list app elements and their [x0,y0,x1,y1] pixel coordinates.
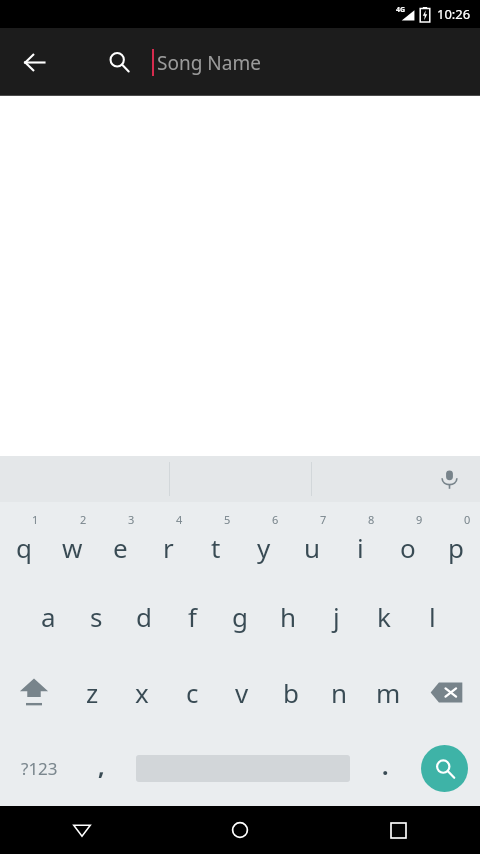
button[interactable]: Back [9,37,59,87]
staticText: g [232,599,248,634]
staticText: d [136,599,152,634]
staticText: 5 [224,512,231,527]
button[interactable]: k [360,578,408,654]
staticText: 3 [128,512,135,527]
staticText: 9 [416,512,423,527]
button[interactable]: Voice input [429,459,469,499]
button[interactable]: ?123 [0,730,78,806]
staticText: p [448,530,464,565]
button[interactable]: z [67,654,117,730]
button[interactable]: Back [58,806,106,854]
staticText: u [304,530,321,565]
button[interactable]: x [117,654,167,730]
button[interactable]: 3 [96,502,144,578]
staticText: n [331,675,348,710]
staticText: 8 [368,512,375,527]
button[interactable]: c [167,654,217,730]
button[interactable]: 2 [48,502,96,578]
button[interactable]: m [364,654,413,730]
staticText: h [280,599,297,634]
button[interactable]: 9 [384,502,432,578]
button[interactable]: Shift [0,654,67,730]
staticText: t [211,530,221,565]
button[interactable]: . [362,730,408,806]
staticText: 2 [80,512,87,527]
button[interactable]: Recents [374,806,422,854]
staticText: 4 [176,512,183,527]
staticText: ?123 [21,757,58,780]
staticText: m [376,675,401,710]
button[interactable]: j [312,578,360,654]
staticText: w [62,530,83,565]
button[interactable]: b [266,654,315,730]
staticText: 7 [320,512,327,527]
button[interactable]: n [315,654,364,730]
staticText: 6 [272,512,279,527]
staticText: q [16,530,32,565]
staticText: Song Name [157,50,261,76]
button[interactable]: 7 [288,502,336,578]
staticText: , [98,750,105,781]
button[interactable]: Home [216,806,264,854]
other: Search [108,51,131,74]
staticText: r [163,530,174,565]
staticText: e [113,530,128,565]
button[interactable]: Search [408,730,480,806]
staticText: a [41,599,56,634]
button[interactable]: s [72,578,120,654]
button[interactable]: h [264,578,312,654]
staticText: y [257,530,271,565]
staticText: b [283,675,299,710]
staticText: f [188,599,197,634]
staticText: s [90,599,103,634]
button[interactable]: 1 [0,502,48,578]
staticText: l [429,599,436,634]
staticText: 1 [32,512,39,527]
staticText: 4G [396,5,406,15]
button[interactable]: l [408,578,456,654]
button[interactable]: , [78,730,124,806]
staticText: z [86,675,99,710]
button[interactable]: a [24,578,72,654]
staticText: 10:26 [437,5,471,23]
button[interactable]: d [120,578,168,654]
staticText: k [377,599,391,634]
staticText: j [333,599,340,634]
button[interactable]: g [216,578,264,654]
staticText: 0 [464,512,471,527]
button[interactable]: Backspace [413,654,480,730]
staticText: x [135,675,149,710]
button[interactable]: 5 [192,502,240,578]
staticText: . [382,750,389,781]
staticText: i [357,530,364,565]
button[interactable]: v [217,654,266,730]
staticText: c [186,675,199,710]
staticText: v [235,675,249,710]
staticText: o [400,530,416,565]
button[interactable]: f [168,578,216,654]
button[interactable]: 4 [144,502,192,578]
button[interactable] [124,730,362,806]
button[interactable]: 6 [240,502,288,578]
button[interactable]: 0 [432,502,480,578]
button[interactable]: 8 [336,502,384,578]
